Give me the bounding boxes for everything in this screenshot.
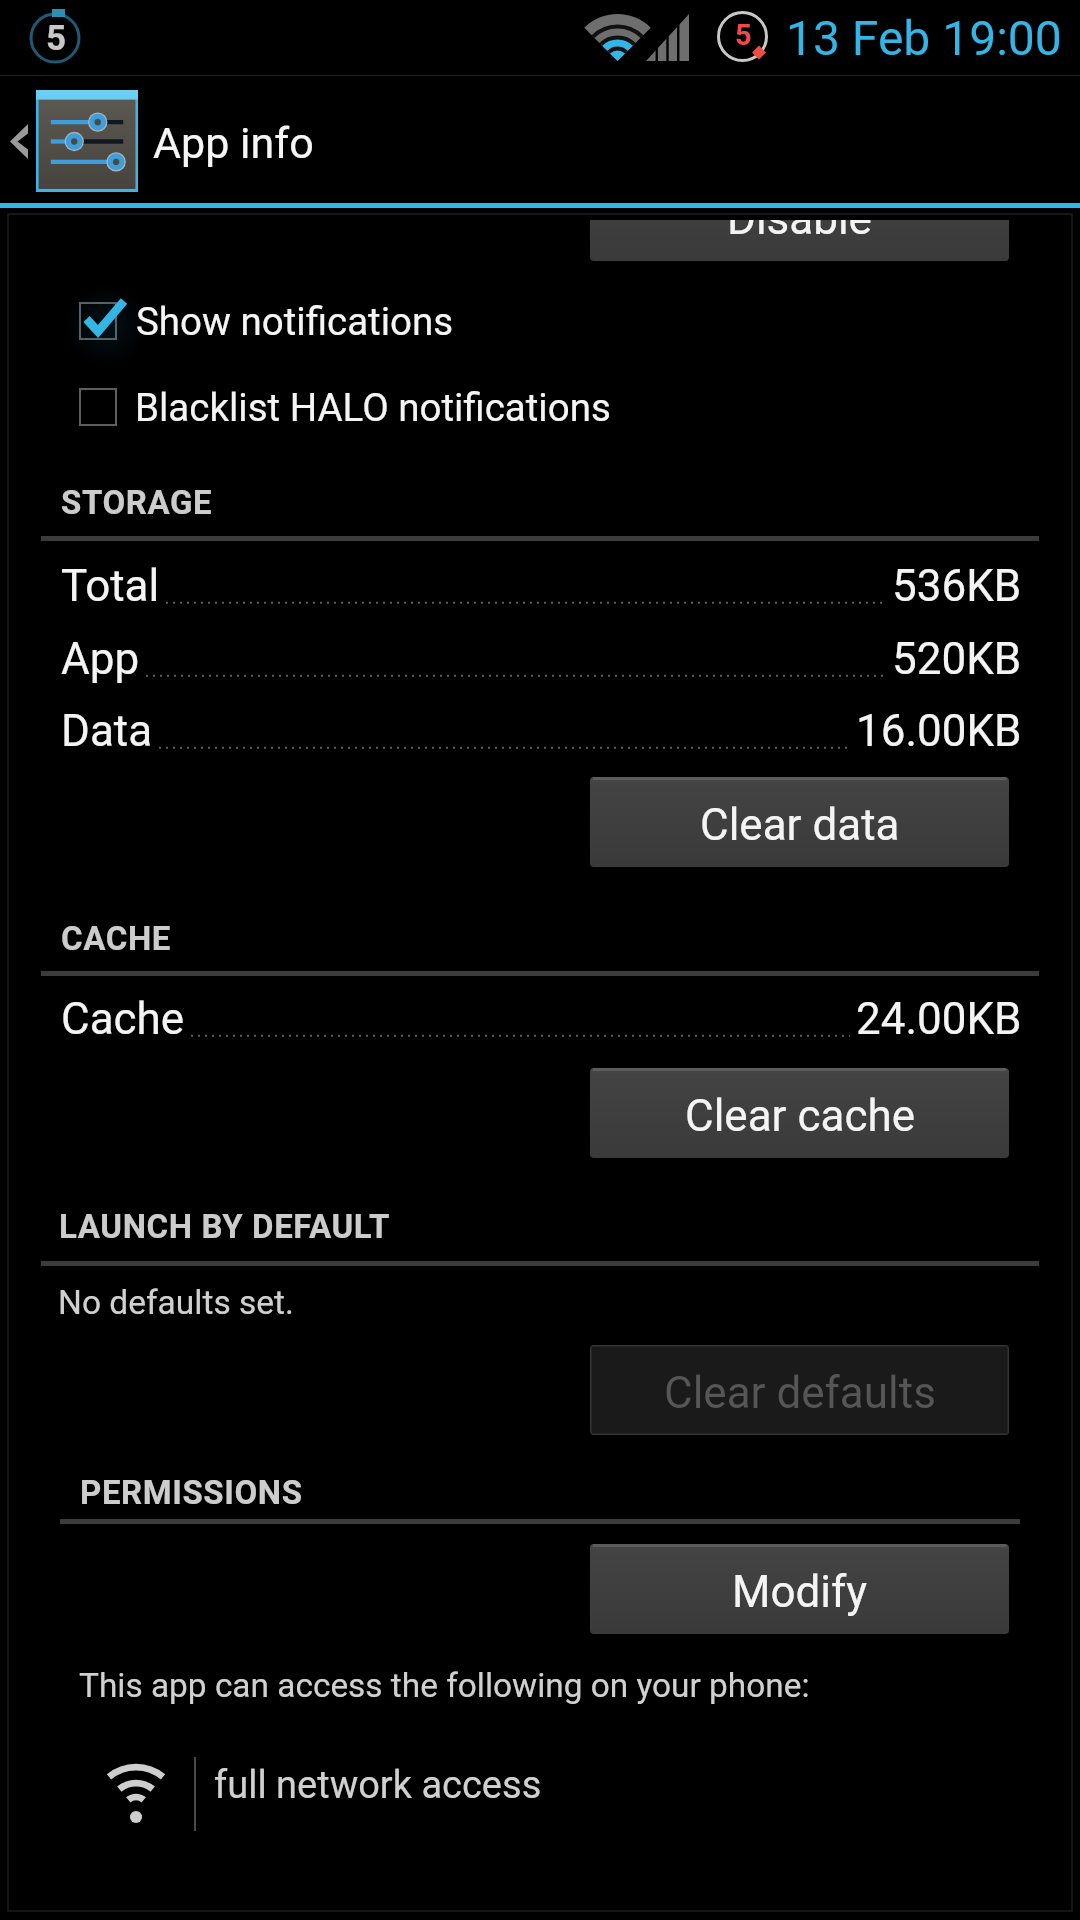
staticText: Blacklist HALO notifications: [135, 385, 611, 430]
button[interactable]: [40, 364, 1030, 450]
staticText: STORAGE: [61, 483, 213, 522]
staticText: full network access: [214, 1763, 542, 1808]
staticText: Clear cache: [685, 1090, 915, 1142]
staticText: CACHE: [61, 919, 171, 958]
staticText: 5: [46, 18, 67, 59]
staticText: Modify: [732, 1566, 868, 1618]
staticText: App info: [153, 118, 314, 168]
staticText: 13 Feb 19:00: [786, 10, 1062, 66]
button[interactable]: Clear defaults: [590, 1345, 1009, 1435]
button[interactable]: Disable: [590, 171, 1009, 261]
staticText: No defaults set.: [58, 1283, 294, 1322]
button[interactable]: Modify: [590, 1544, 1009, 1634]
staticText: Cache: [61, 993, 185, 1045]
staticText: Clear data: [700, 799, 900, 851]
staticText: Total: [61, 560, 160, 612]
staticText: 536KB: [892, 560, 1022, 612]
staticText: 16.00KB: [856, 705, 1022, 757]
staticText: This app can access the following on you…: [79, 1666, 810, 1705]
staticText: PERMISSIONS: [80, 1473, 303, 1512]
button[interactable]: [40, 278, 1030, 364]
button[interactable]: Clear cache: [590, 1068, 1009, 1158]
other: Back: [10, 124, 28, 159]
staticText: Clear defaults: [664, 1367, 936, 1419]
staticText: 5: [735, 18, 752, 52]
staticText: 520KB: [892, 633, 1022, 685]
staticText: Disable: [727, 193, 872, 245]
staticText: 24.00KB: [856, 993, 1022, 1045]
staticText: Data: [61, 705, 153, 757]
staticText: Show notifications: [136, 299, 454, 344]
staticText: App: [61, 633, 140, 685]
button[interactable]: App info: [0, 76, 1080, 203]
button[interactable]: Clear data: [590, 777, 1009, 867]
staticText: LAUNCH BY DEFAULT: [59, 1207, 390, 1246]
